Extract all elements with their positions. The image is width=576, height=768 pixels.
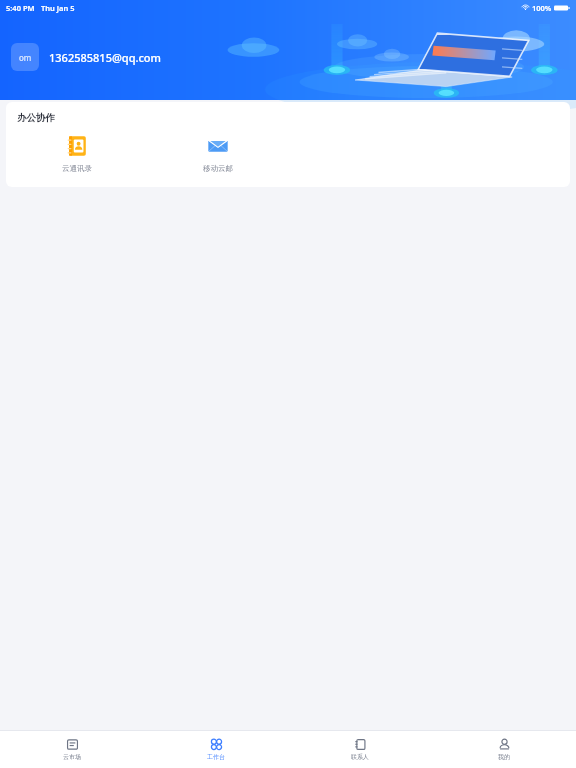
button[interactable]: 云市场 [0,731,144,768]
button[interactable]: 我的 [432,731,576,768]
staticText: 云市场 [63,753,81,761]
staticText: 移动云邮 [203,164,233,173]
staticText: Thu Jan 5 [41,3,75,13]
staticText: 办公协作 [17,112,55,124]
button[interactable]: 云通讯录 [6,135,147,173]
staticText: 我的 [498,753,510,761]
staticText: 1362585815@qq.com [49,50,161,65]
staticText: 云通讯录 [62,164,92,173]
staticText: 工作台 [207,753,225,761]
button[interactable]: 移动云邮 [147,135,288,173]
button[interactable]: 联系人 [288,731,432,768]
button[interactable]: om [11,43,39,71]
staticText: om [19,52,32,63]
button[interactable]: 工作台 [144,731,288,768]
staticText: 5:40 PM [6,3,35,13]
staticText: 联系人 [351,753,369,761]
staticText: 100% [532,3,552,13]
